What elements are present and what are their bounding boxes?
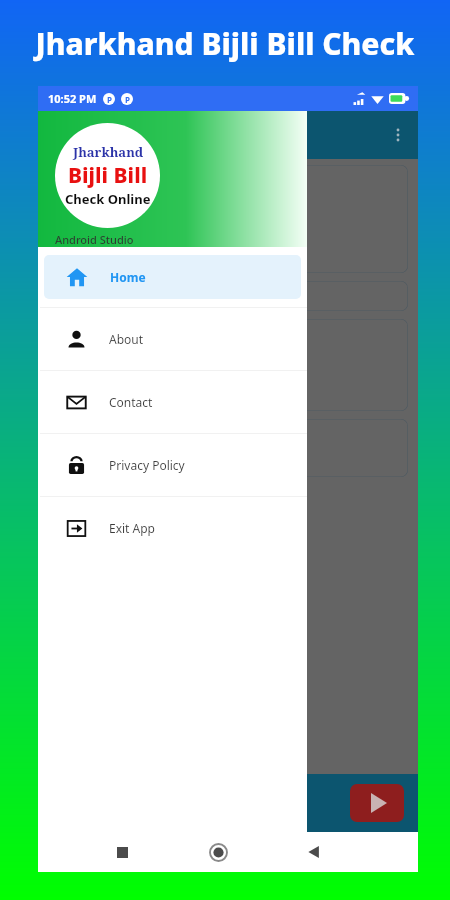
- staticText: P: [125, 94, 130, 105]
- staticText: Exit App: [109, 520, 155, 536]
- button[interactable]: Privacy Policy: [38, 434, 307, 496]
- staticText: Jharkhand Bijli Bill Check: [35, 23, 415, 64]
- button[interactable]: Mobile Number: [48, 165, 408, 273]
- staticText: Bijli Bill: [68, 161, 148, 190]
- staticText: Privacy Policy: [109, 457, 185, 473]
- staticText: About: [109, 331, 144, 347]
- button[interactable]: शेयर बटन दबाकर दूसरा एप: [48, 419, 408, 477]
- staticText: Jharkhand: [73, 143, 144, 161]
- button[interactable]: Back: [297, 835, 331, 869]
- staticText: Mobile Number: [176, 241, 280, 260]
- staticText: P: [107, 94, 112, 105]
- button[interactable]: YouTube channel: [350, 784, 404, 822]
- staticText: Home: [110, 269, 146, 285]
- button[interactable]: About: [38, 308, 307, 370]
- button[interactable]: Home: [44, 255, 301, 299]
- button[interactable]: Contact: [38, 371, 307, 433]
- button[interactable]: [48, 281, 408, 311]
- button[interactable]: Home: [201, 835, 235, 869]
- staticText: Android Studio: [55, 232, 134, 247]
- staticText: Check Online: [65, 190, 151, 208]
- staticText: शेयर बटन दबाकर दूसरा एप: [56, 431, 175, 447]
- button[interactable]: Recent apps: [105, 835, 139, 869]
- button[interactable]: Share App: [48, 319, 408, 411]
- button[interactable]: Exit App: [38, 497, 307, 559]
- staticText: शेयर कर बढ़ाएं: [56, 450, 120, 466]
- staticText: 10:52 PM: [48, 91, 97, 106]
- staticText: Contact: [109, 394, 153, 410]
- button[interactable]: More options: [378, 115, 418, 155]
